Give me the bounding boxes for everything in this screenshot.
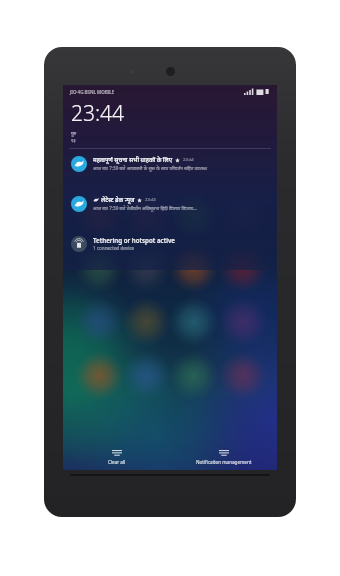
staticText: 23:44 xyxy=(71,99,125,128)
button[interactable]: लेटेस्ट ब्रेक न्यूज xyxy=(63,192,277,232)
button[interactable]: महत्वपूर्ण सूचना सभी ग्राहकों के लिए xyxy=(63,152,277,192)
button[interactable]: Tethering or hotspot active xyxy=(63,232,277,270)
staticText: आज रात 7:30 बजे आपकानी के शुरू के साथ पर… xyxy=(93,165,208,171)
staticText: लेटेस्ट ब्रेक न्यूज xyxy=(101,196,135,204)
staticText: 1 connected device xyxy=(93,245,135,251)
other: Clear all xyxy=(112,450,122,457)
staticText: 23:44 xyxy=(183,157,194,163)
staticText: Tethering or hotspot active xyxy=(93,236,175,244)
staticText: 23:43 xyxy=(145,197,156,203)
staticText: Notification management xyxy=(196,459,252,465)
staticText: आज रात 7:30 बजे टेलीकॉम अधिसूचना हिंदी व… xyxy=(93,205,197,211)
staticText: Clear all xyxy=(108,459,126,465)
staticText: महत्वपूर्ण सूचना सभी ग्राहकों के लिए xyxy=(93,156,173,164)
staticText: १३ xyxy=(71,137,76,143)
button[interactable]: Clear all xyxy=(63,447,170,468)
staticText: गुरु xyxy=(71,130,77,136)
staticText: JIO 4G BSNL MOBILE xyxy=(70,89,115,95)
button[interactable]: Notification management xyxy=(170,447,277,468)
other: Notification management xyxy=(219,450,229,457)
